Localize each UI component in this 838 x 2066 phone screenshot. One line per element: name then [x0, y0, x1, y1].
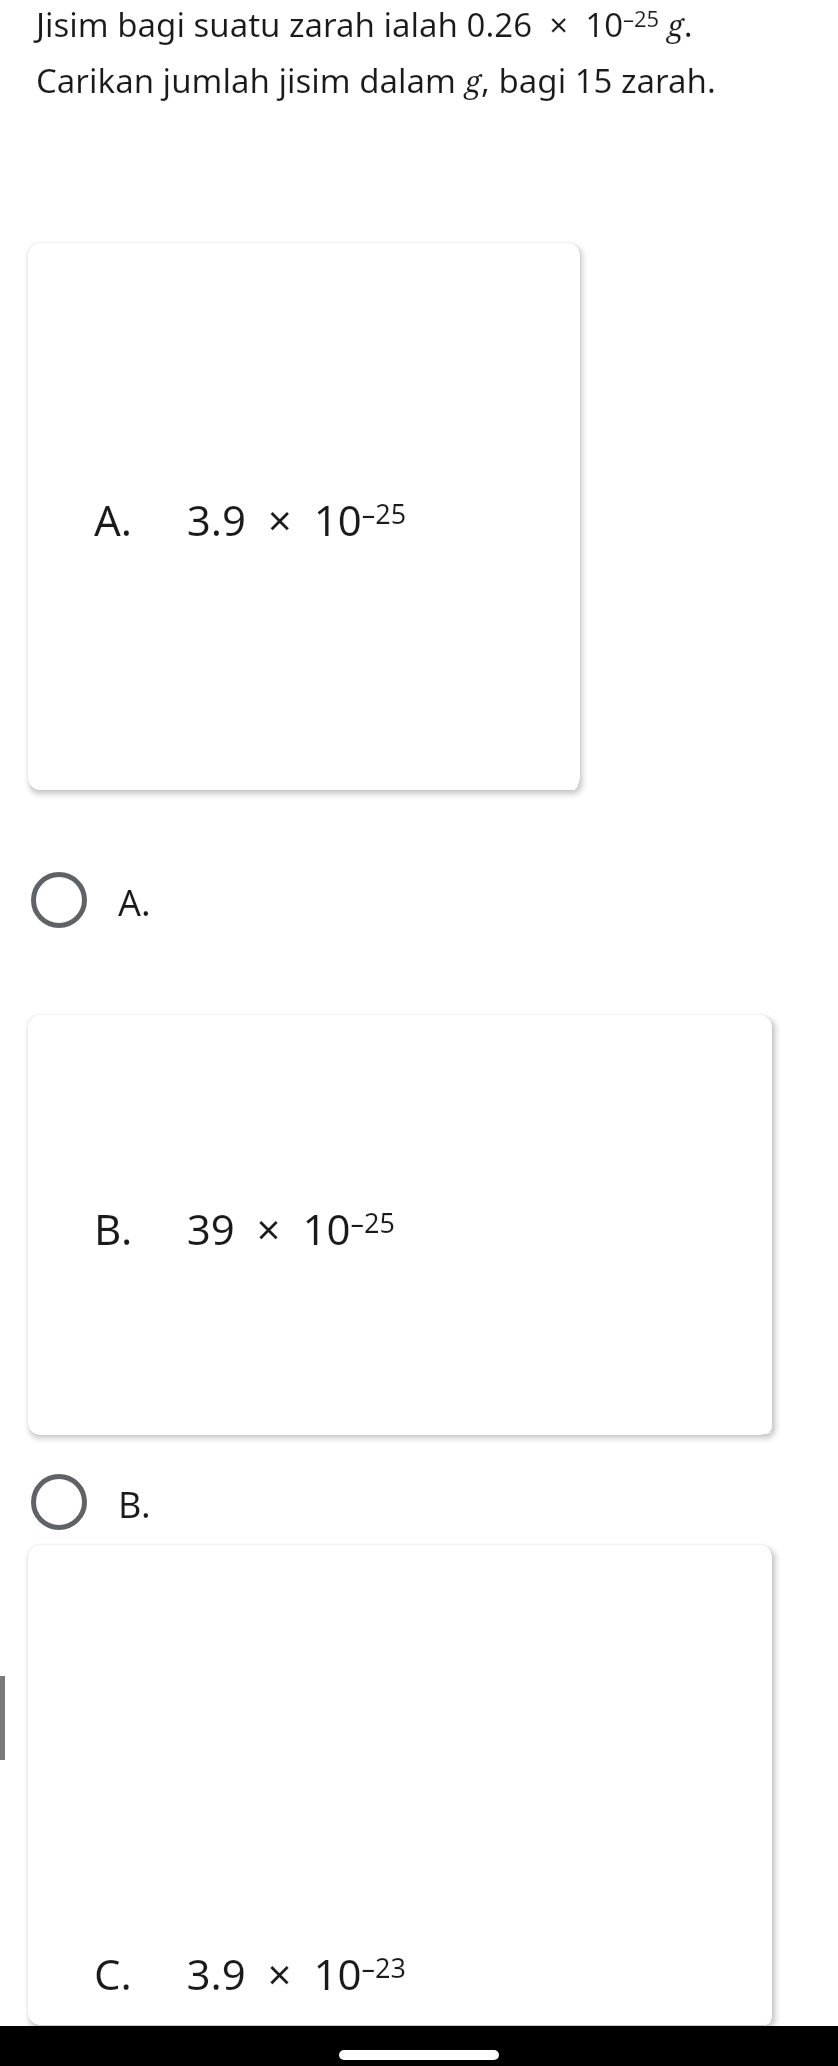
- staticText: C. 3.9 × 10–23: [94, 1945, 406, 2002]
- other: Select option B.: [31, 1474, 87, 1530]
- other: Select option A.: [31, 872, 87, 928]
- button[interactable]: Select option B.: [14, 1462, 314, 1540]
- button[interactable]: A. 3.9 × 10–25: [28, 243, 580, 790]
- staticText: B.: [118, 1480, 151, 1529]
- staticText: Carikan jumlah jisim dalam g, bagi 15 za…: [36, 58, 716, 103]
- button[interactable]: Select option A.: [14, 860, 314, 938]
- button[interactable]: B. 39 × 10–25: [28, 1015, 772, 1435]
- staticText: B. 39 × 10–25: [94, 1200, 395, 1257]
- staticText: Jisim bagi suatu zarah ialah 0.26 × 10–2…: [36, 2, 693, 47]
- staticText: A. 3.9 × 10–25: [94, 491, 407, 548]
- button[interactable]: C. 3.9 × 10–23: [28, 1545, 772, 2025]
- staticText: A.: [118, 878, 151, 927]
